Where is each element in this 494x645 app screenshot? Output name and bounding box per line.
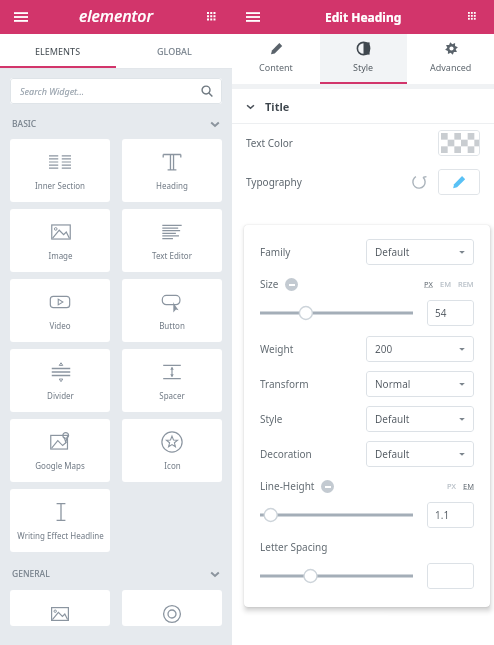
staticText: Google Maps	[35, 460, 85, 471]
button[interactable]: Search Widget...	[10, 78, 222, 104]
staticText: Title	[265, 99, 290, 114]
button[interactable]: GLOBAL	[116, 34, 232, 68]
button[interactable]: Default	[366, 406, 474, 432]
button[interactable]: EM	[440, 279, 451, 289]
button[interactable]: Spacer	[122, 349, 222, 412]
staticText: Inner Section	[35, 180, 85, 191]
button[interactable]: Google Maps	[10, 419, 110, 482]
staticText: Search Widget...	[20, 85, 85, 97]
button[interactable]: Reset typography	[410, 173, 428, 191]
button[interactable]: Image	[10, 209, 110, 272]
button[interactable]: 200	[366, 336, 474, 362]
button[interactable]: Video	[10, 279, 110, 342]
staticText: Spacer	[159, 390, 185, 401]
staticText: Normal	[375, 377, 411, 391]
staticText: Letter Spacing	[260, 540, 328, 554]
button[interactable]: EM	[463, 481, 474, 491]
staticText: BASIC	[12, 118, 37, 130]
button[interactable]: 1.1	[427, 502, 474, 528]
button[interactable]: Writing Effect Headline	[10, 489, 110, 552]
staticText: Transform	[260, 377, 309, 391]
button[interactable]: Menu	[8, 4, 34, 30]
button[interactable]	[260, 507, 413, 523]
staticText: Family	[260, 245, 291, 259]
button[interactable]	[10, 590, 110, 626]
staticText: Text Editor	[152, 250, 192, 261]
button[interactable]: GENERAL	[12, 564, 220, 584]
button[interactable]: Reset Line-Height	[321, 480, 334, 493]
button[interactable]: REM	[458, 279, 474, 289]
button[interactable]: Advanced	[407, 34, 494, 84]
staticText: elementor	[79, 5, 153, 27]
button[interactable]: Text Editor	[122, 209, 222, 272]
button[interactable]	[260, 568, 413, 584]
button[interactable]: Edit typography	[438, 169, 480, 195]
button[interactable]: Icon	[122, 419, 222, 482]
button[interactable]: Menu	[240, 4, 266, 30]
staticText: GENERAL	[12, 568, 50, 580]
staticText: Video	[49, 320, 71, 331]
button[interactable]: Divider	[10, 349, 110, 412]
staticText: Edit Heading	[325, 9, 402, 25]
button[interactable]: Widgets grid	[200, 5, 224, 29]
button[interactable]: Title	[246, 89, 480, 123]
staticText: Writing Effect Headline	[17, 530, 104, 541]
staticText: 1.1	[435, 508, 450, 522]
staticText: 200	[375, 342, 393, 356]
staticText: Icon	[164, 460, 181, 471]
staticText: Button	[159, 320, 185, 331]
button[interactable]: 54	[427, 300, 474, 326]
button[interactable]: Normal	[366, 371, 474, 397]
button[interactable]: Button	[122, 279, 222, 342]
staticText: 54	[435, 306, 447, 320]
staticText: Typography	[246, 175, 302, 189]
staticText: Default	[375, 245, 410, 259]
button[interactable]: Content	[232, 34, 320, 84]
staticText: GLOBAL	[157, 45, 192, 57]
staticText: Line-Height	[260, 479, 315, 493]
button[interactable]: Inner Section	[10, 139, 110, 202]
button[interactable]: Default	[366, 239, 474, 265]
button[interactable]: Widgets grid	[462, 6, 484, 28]
button[interactable]: PX	[424, 279, 433, 289]
button[interactable]	[260, 305, 413, 321]
staticText: Style	[353, 61, 374, 73]
staticText: ELEMENTS	[35, 45, 81, 57]
button[interactable]: BASIC	[12, 114, 220, 134]
staticText: Default	[375, 447, 410, 461]
button[interactable]	[427, 563, 474, 589]
staticText: Size	[260, 277, 279, 291]
staticText: Content	[259, 61, 293, 73]
button[interactable]: PX	[447, 481, 456, 491]
button[interactable]: Text Color	[246, 124, 480, 162]
staticText: Weight	[260, 342, 294, 356]
button[interactable]: Default	[366, 441, 474, 467]
button[interactable]: Style	[320, 34, 407, 84]
staticText: Decoration	[260, 447, 312, 461]
staticText: Heading	[156, 180, 188, 191]
staticText: Default	[375, 412, 410, 426]
staticText: Image	[48, 250, 73, 261]
staticText: Style	[260, 412, 283, 426]
button[interactable]	[122, 590, 222, 626]
staticText: Divider	[47, 390, 74, 401]
button[interactable]: Reset Size	[285, 278, 298, 291]
staticText: Advanced	[430, 61, 472, 73]
button[interactable]: ELEMENTS	[0, 34, 116, 68]
button[interactable]: Heading	[122, 139, 222, 202]
staticText: Text Color	[246, 136, 293, 150]
